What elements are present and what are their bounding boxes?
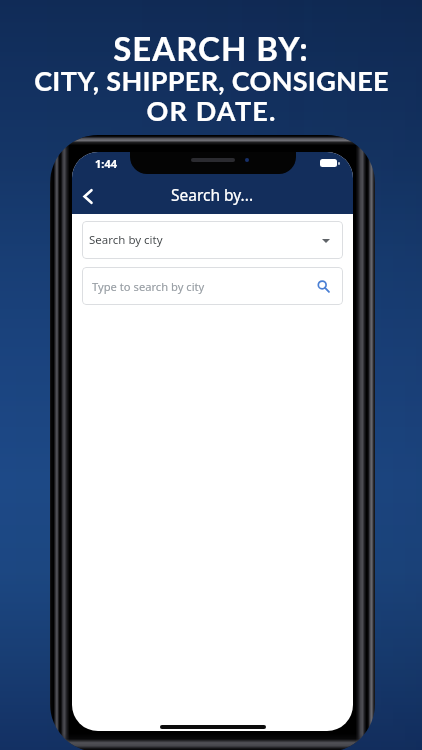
staticText: Search by city — [89, 232, 163, 248]
staticText: Type to search by city — [92, 279, 205, 294]
staticText: 1:44 — [95, 156, 117, 171]
staticText: SEARCH BY: — [113, 28, 309, 68]
button[interactable]: Back — [72, 177, 106, 211]
staticText: CITY, SHIPPER, CONSIGNEE — [34, 64, 389, 96]
button[interactable]: Type to search by city — [82, 267, 343, 305]
staticText: OR DATE. — [146, 94, 277, 126]
button[interactable]: Search by city — [82, 221, 343, 259]
staticText: Search by... — [171, 184, 254, 205]
